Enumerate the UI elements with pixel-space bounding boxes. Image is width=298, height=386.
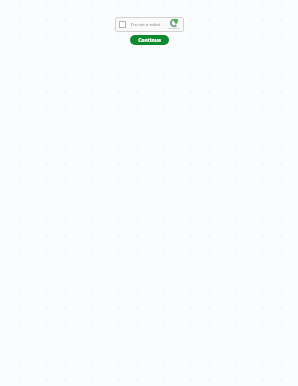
staticText: reCAPTCHA	[168, 27, 180, 30]
staticText: I'm not a robot	[131, 22, 161, 28]
button[interactable]: I'm not a robot checkbox	[115, 17, 184, 32]
button[interactable]: Continue	[130, 35, 169, 45]
staticText: Continue	[138, 37, 161, 44]
other: reCAPTCHA logo	[170, 19, 178, 27]
button[interactable]: I'm not a robot checkbox	[119, 21, 126, 28]
